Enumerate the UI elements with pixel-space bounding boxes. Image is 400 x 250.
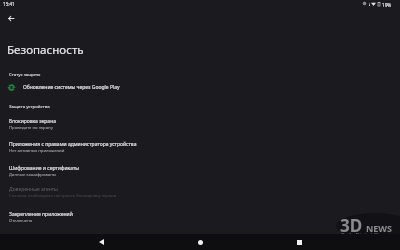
button[interactable]: Доверенные агенты [0,184,400,207]
staticText: Обновление системы через Google Play [23,84,120,91]
button[interactable]: Обновление системы через Google Play [0,80,400,95]
button[interactable]: Back [92,234,110,250]
button[interactable]: Шифрование и сертификаты [0,163,400,185]
staticText: 19% [382,2,392,8]
staticText: Нет активных приложений [9,147,65,153]
staticText: Блокировка экрана [9,118,56,125]
button[interactable]: Home [191,234,209,250]
staticText: Daily Digital Digest [341,231,391,239]
staticText: Приложения с правами администратора устр… [9,141,137,148]
button[interactable]: Приложения с правами администратора устр… [0,139,400,162]
staticText: Шифрование и сертификаты [9,165,79,172]
staticText: Защита устройства [9,103,50,109]
staticText: 15:41 [3,1,15,7]
staticText: Отключено [9,217,33,223]
staticText: Статус защиты [9,71,41,77]
button[interactable]: Блокировка экрана [0,116,400,138]
staticText: Данные зашифрованы [9,171,57,177]
button[interactable]: Закрепление приложений [0,209,400,231]
staticText: Доверенные агенты [9,186,58,193]
staticText: Безопасность [7,42,84,58]
staticText: 3D [340,214,363,237]
staticText: Закрепление приложений [9,211,73,218]
button[interactable]: Recent apps [290,234,308,250]
button[interactable]: Back [3,10,19,26]
staticText: Сначала необходимо настроить блокировку … [9,192,117,198]
staticText: Проведите по экрану [9,124,53,130]
staticText: NEWS [366,222,393,234]
